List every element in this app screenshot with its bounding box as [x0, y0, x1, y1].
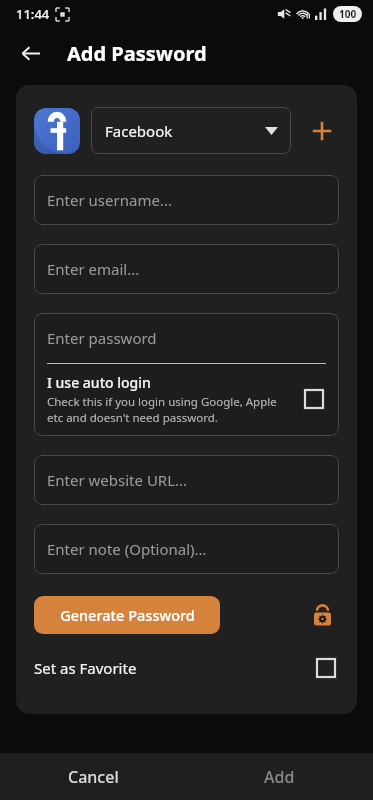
- button[interactable]: Add: [186, 753, 373, 800]
- staticText: Add: [264, 766, 295, 788]
- staticText: 100: [339, 7, 357, 21]
- button[interactable]: Add new app: [305, 114, 339, 148]
- button[interactable]: Checkbox: [301, 386, 327, 412]
- staticText: Set as Favorite: [34, 658, 313, 678]
- button[interactable]: Enter note (Optional)...: [34, 524, 339, 574]
- button[interactable]: Cancel: [0, 753, 186, 800]
- staticText: Enter username...: [47, 190, 172, 210]
- button[interactable]: Enter username...: [34, 175, 339, 225]
- staticText: 11:44: [16, 5, 50, 23]
- staticText: Generate Password: [60, 605, 195, 625]
- button[interactable]: Enter email...: [34, 244, 339, 294]
- button[interactable]: I use auto login: [47, 373, 327, 425]
- staticText: I use auto login: [47, 373, 151, 392]
- button[interactable]: Back: [11, 34, 49, 72]
- staticText: Enter password: [47, 328, 157, 348]
- button[interactable]: Set as Favorite: [34, 655, 339, 681]
- button[interactable]: Facebook: [91, 107, 291, 154]
- staticText: Enter website URL...: [47, 470, 188, 490]
- button[interactable]: Enter website URL...: [34, 455, 339, 505]
- staticText: Cancel: [68, 766, 119, 788]
- button[interactable]: Enter password: [34, 313, 339, 363]
- button[interactable]: Password settings: [305, 598, 339, 632]
- button[interactable]: Facebook: [34, 108, 80, 154]
- staticText: Enter email...: [47, 259, 140, 279]
- button[interactable]: Checkbox: [313, 655, 339, 681]
- staticText: Add Password: [67, 40, 207, 67]
- staticText: Check this if you login using Google, Ap…: [47, 394, 277, 425]
- staticText: Facebook: [105, 121, 173, 141]
- button[interactable]: Generate Password: [34, 596, 220, 634]
- staticText: Enter note (Optional)...: [47, 539, 207, 559]
